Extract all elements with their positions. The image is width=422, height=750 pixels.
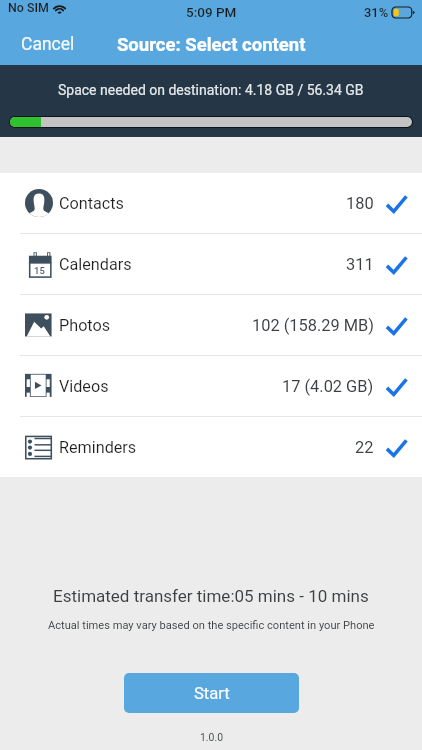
staticText: Actual times may vary based on the speci…	[48, 619, 375, 632]
button[interactable]: Start	[124, 673, 299, 713]
staticText: Photos	[59, 316, 111, 335]
staticText: Videos	[59, 377, 109, 396]
staticText: 1.0.0	[200, 731, 223, 743]
staticText: Contacts	[59, 194, 124, 213]
staticText: Calendars	[59, 255, 132, 274]
staticText: 15	[34, 265, 45, 276]
staticText: 180	[346, 194, 374, 213]
staticText: 102 (158.29 MB)	[252, 316, 374, 335]
button[interactable]: Contacts	[0, 173, 422, 233]
staticText: Space needed on destination: 4.18 GB / 5…	[58, 82, 364, 98]
button[interactable]: Photos	[0, 295, 422, 355]
staticText: 22	[355, 438, 374, 457]
button[interactable]: Reminders	[0, 417, 422, 477]
staticText: Cancel	[21, 34, 75, 55]
staticText: Reminders	[59, 438, 137, 457]
staticText: 311	[346, 255, 374, 274]
staticText: Estimated transfer time:05 mins - 10 min…	[53, 586, 369, 606]
staticText: 17 (4.02 GB)	[282, 377, 374, 396]
button[interactable]: Cancel	[0, 26, 89, 63]
staticText: Source: Select content	[117, 34, 306, 56]
button[interactable]: Videos	[0, 356, 422, 416]
button[interactable]: 15	[0, 234, 422, 294]
staticText: No SIM	[8, 0, 49, 15]
staticText: Start	[194, 684, 230, 703]
staticText: 31%	[364, 5, 389, 20]
staticText: 5:09 PM	[186, 4, 237, 20]
